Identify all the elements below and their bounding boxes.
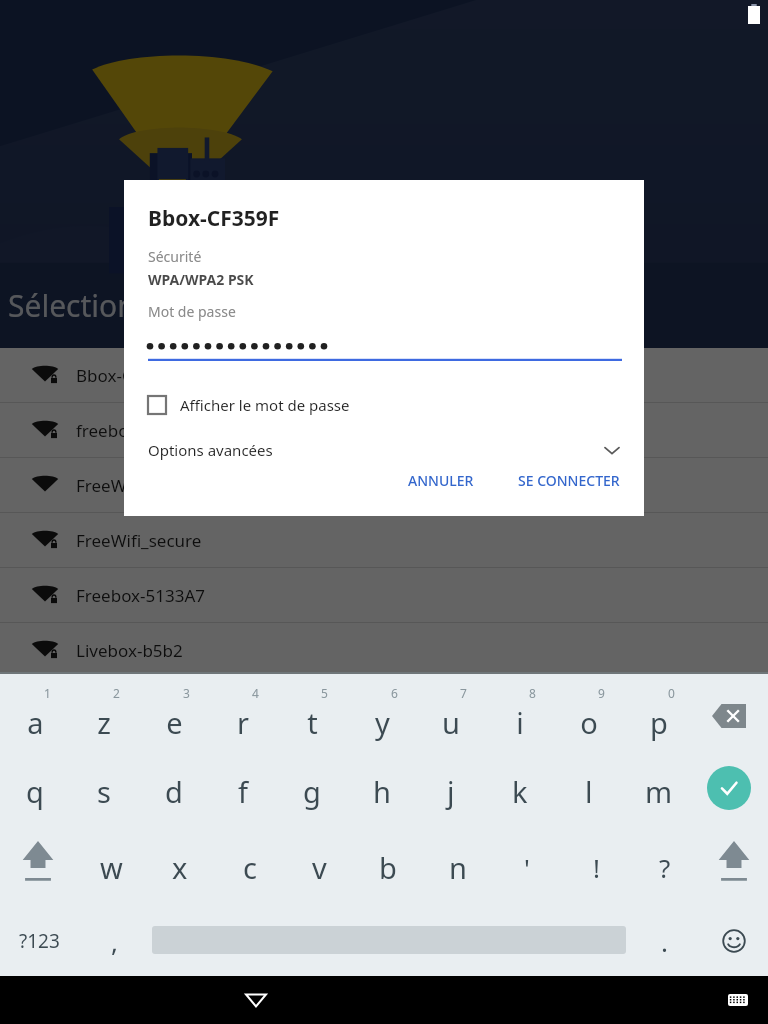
button[interactable]: d	[142, 752, 206, 830]
button[interactable]: Bbox-CF359F	[0, 348, 768, 403]
button[interactable]: v	[287, 828, 351, 906]
button[interactable]: 7	[419, 674, 483, 752]
button[interactable]: Emoji	[702, 904, 766, 978]
button[interactable]: Shift	[10, 838, 66, 896]
staticText: m	[645, 772, 673, 811]
staticText: p	[650, 703, 668, 742]
button[interactable]: Options avancées	[148, 433, 622, 467]
staticText: Afficher le mot de passe	[180, 395, 350, 415]
staticText: l	[585, 772, 593, 811]
button[interactable]: FreeWifi	[0, 458, 768, 513]
staticText: freebox_GHJKLM	[76, 419, 210, 442]
button[interactable]: k	[488, 752, 552, 830]
button[interactable]: q	[3, 752, 67, 830]
staticText: 5	[321, 685, 328, 701]
staticText: FreeWifi	[76, 474, 142, 497]
staticText: o	[580, 703, 598, 742]
staticText: ?	[659, 850, 671, 885]
button[interactable]: b	[356, 828, 420, 906]
button[interactable]: w	[79, 828, 143, 906]
button[interactable]: SE CONNECTER	[504, 463, 634, 498]
staticText: v	[312, 848, 327, 887]
staticText: k	[512, 772, 528, 811]
button[interactable]: Hide keyboard	[232, 976, 280, 1024]
staticText: n	[449, 848, 467, 887]
staticText: SE CONNECTER	[518, 471, 620, 490]
button[interactable]: g	[280, 752, 344, 830]
staticText: 8	[529, 685, 536, 701]
button[interactable]: Livebox-b5b2	[0, 623, 768, 678]
staticText: j	[447, 772, 455, 811]
staticText: 9	[598, 685, 605, 701]
button[interactable]: 4	[211, 674, 275, 752]
staticText: 4	[252, 685, 259, 701]
button[interactable]: .	[634, 904, 694, 978]
staticText: Sécurité	[148, 247, 202, 266]
staticText: w	[100, 848, 123, 887]
button[interactable]: Afficher le mot de passe	[148, 387, 622, 423]
button[interactable]: Switch keyboard	[718, 980, 758, 1020]
button[interactable]: freebox_GHJKLM	[0, 403, 768, 458]
staticText: Sélectionnez un réseau	[8, 285, 334, 326]
button[interactable]: ?	[633, 828, 697, 906]
staticText: Bbox-CF359F	[76, 364, 180, 387]
button[interactable]: s	[72, 752, 136, 830]
staticText: Freebox-5133A7	[76, 584, 206, 607]
staticText: r	[237, 703, 249, 742]
staticText: FreeWifi_secure	[76, 529, 202, 552]
button[interactable]: 9	[557, 674, 621, 752]
staticText: ?123	[19, 928, 60, 954]
button[interactable]: ,	[84, 904, 144, 978]
staticText: x	[172, 848, 188, 887]
button[interactable]: 5	[280, 674, 344, 752]
staticText: ,	[111, 924, 118, 959]
staticText: 3	[183, 685, 190, 701]
button[interactable]: ?123	[6, 904, 72, 978]
staticText: 7	[460, 685, 467, 701]
staticText: !	[593, 850, 600, 885]
staticText: Livebox-b5b2	[76, 639, 183, 662]
button[interactable]: l	[557, 752, 621, 830]
staticText: a	[27, 703, 44, 742]
button[interactable]	[148, 321, 622, 361]
button[interactable]: m	[627, 752, 691, 830]
button[interactable]: Backspace	[700, 696, 758, 736]
button[interactable]: c	[218, 828, 282, 906]
button[interactable]: h	[350, 752, 414, 830]
button[interactable]: 6	[350, 674, 414, 752]
staticText: y	[375, 703, 390, 742]
button[interactable]: f	[211, 752, 275, 830]
staticText: d	[165, 772, 183, 811]
button[interactable]: x	[148, 828, 212, 906]
staticText: 1	[44, 685, 51, 701]
button[interactable]: 3	[142, 674, 206, 752]
button[interactable]: ANNULER	[394, 463, 488, 498]
button[interactable]: j	[419, 752, 483, 830]
staticText: 0	[668, 685, 675, 701]
button[interactable]: 2	[72, 674, 136, 752]
staticText: e	[166, 703, 183, 742]
staticText: 2	[113, 685, 120, 701]
staticText: i	[516, 703, 524, 742]
staticText: g	[303, 772, 321, 811]
button[interactable]: Enter	[707, 766, 751, 810]
button[interactable]: !	[564, 828, 628, 906]
staticText: t	[307, 703, 318, 742]
button[interactable]: 1	[3, 674, 67, 752]
button[interactable]: Freebox-5133A7	[0, 568, 768, 623]
staticText: q	[26, 772, 44, 811]
staticText: f	[238, 772, 248, 811]
button[interactable]: Shift	[706, 838, 762, 896]
staticText: .	[661, 924, 668, 959]
button[interactable]: '	[495, 828, 559, 906]
staticText: c	[243, 848, 257, 887]
staticText: z	[97, 703, 111, 742]
staticText: WPA/WPA2 PSK	[148, 270, 254, 289]
staticText: Options avancées	[148, 440, 273, 460]
staticText: '	[524, 850, 530, 885]
button[interactable]: 0	[627, 674, 691, 752]
button[interactable]: n	[426, 828, 490, 906]
button[interactable]: FreeWifi_secure	[0, 513, 768, 568]
button[interactable]: 8	[488, 674, 552, 752]
